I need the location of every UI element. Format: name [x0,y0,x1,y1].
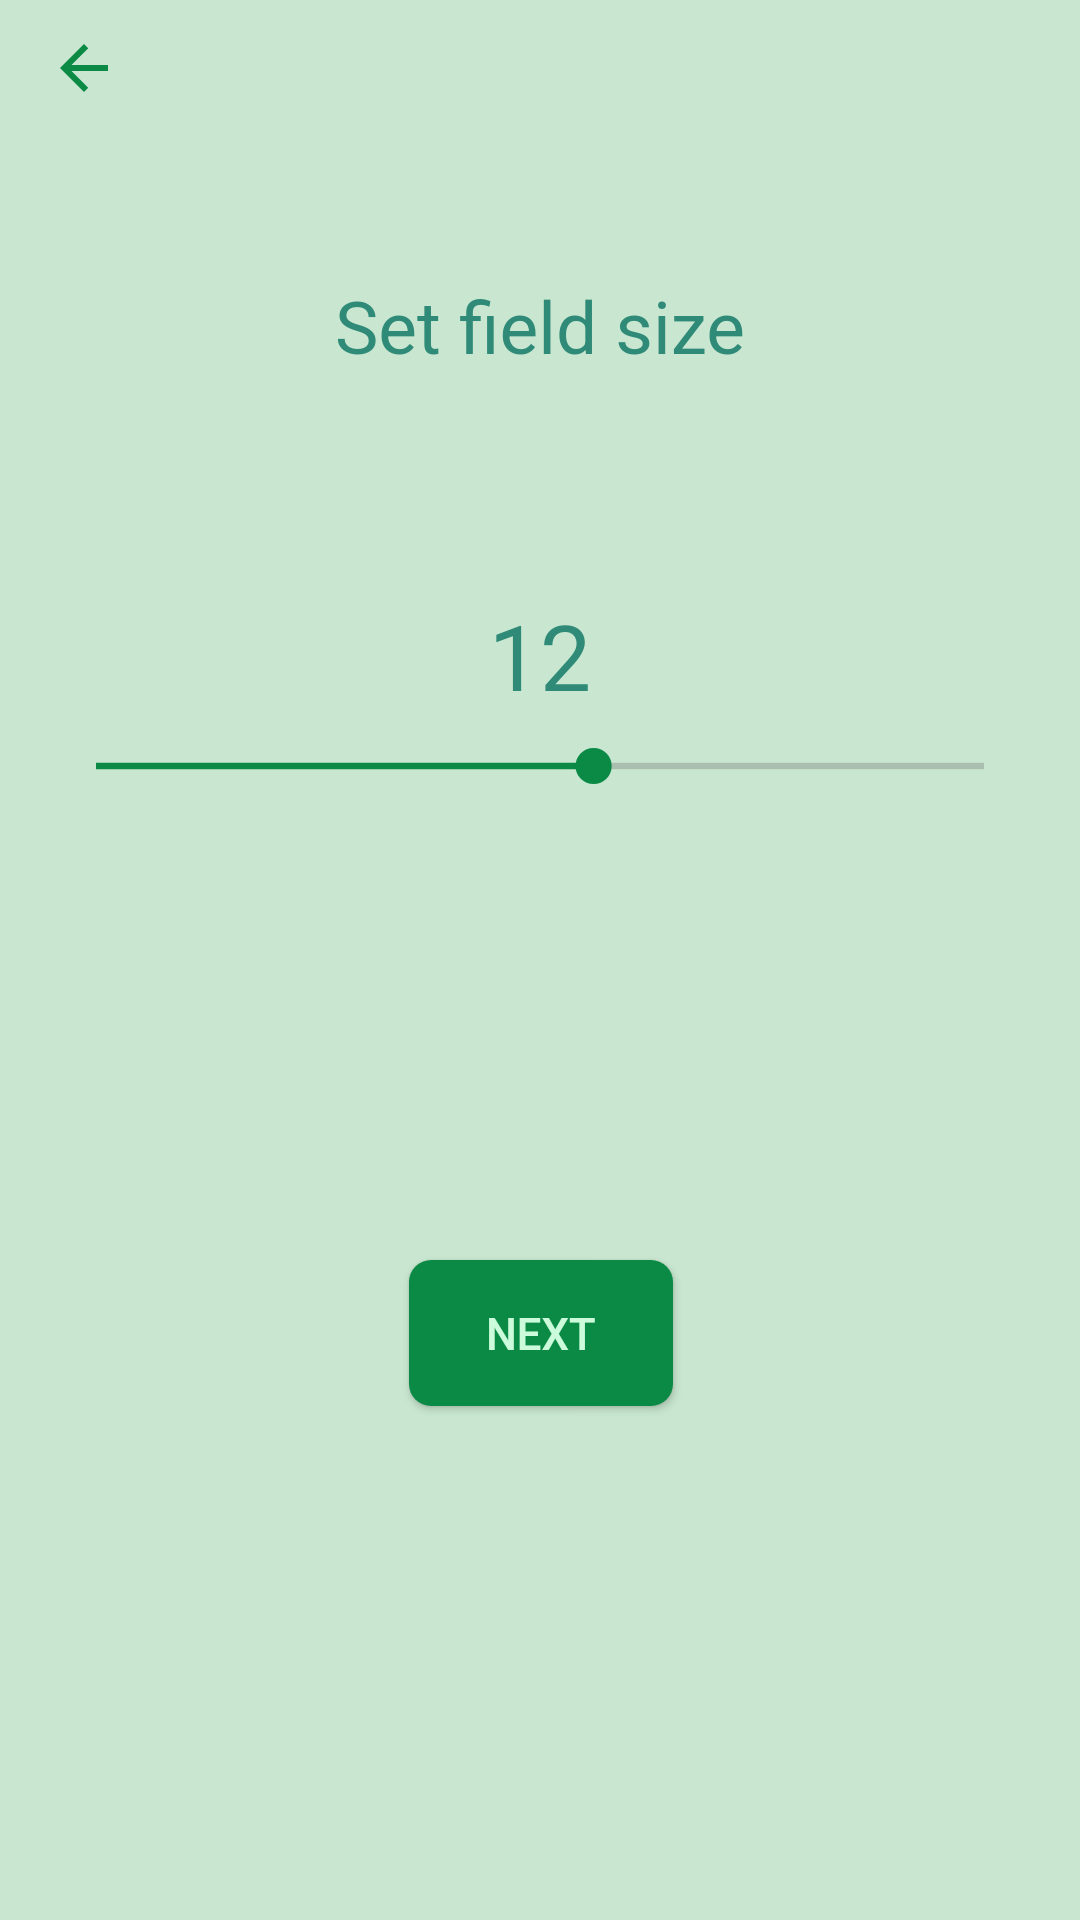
button[interactable]: NEXT [409,1260,673,1406]
button[interactable]: Field size slider, value 12 [78,730,1002,802]
staticText: NEXT [486,1310,596,1361]
staticText: 12 [0,607,1080,1920]
button[interactable]: Navigate back [12,0,156,140]
staticText: Set field size [0,286,1080,1920]
